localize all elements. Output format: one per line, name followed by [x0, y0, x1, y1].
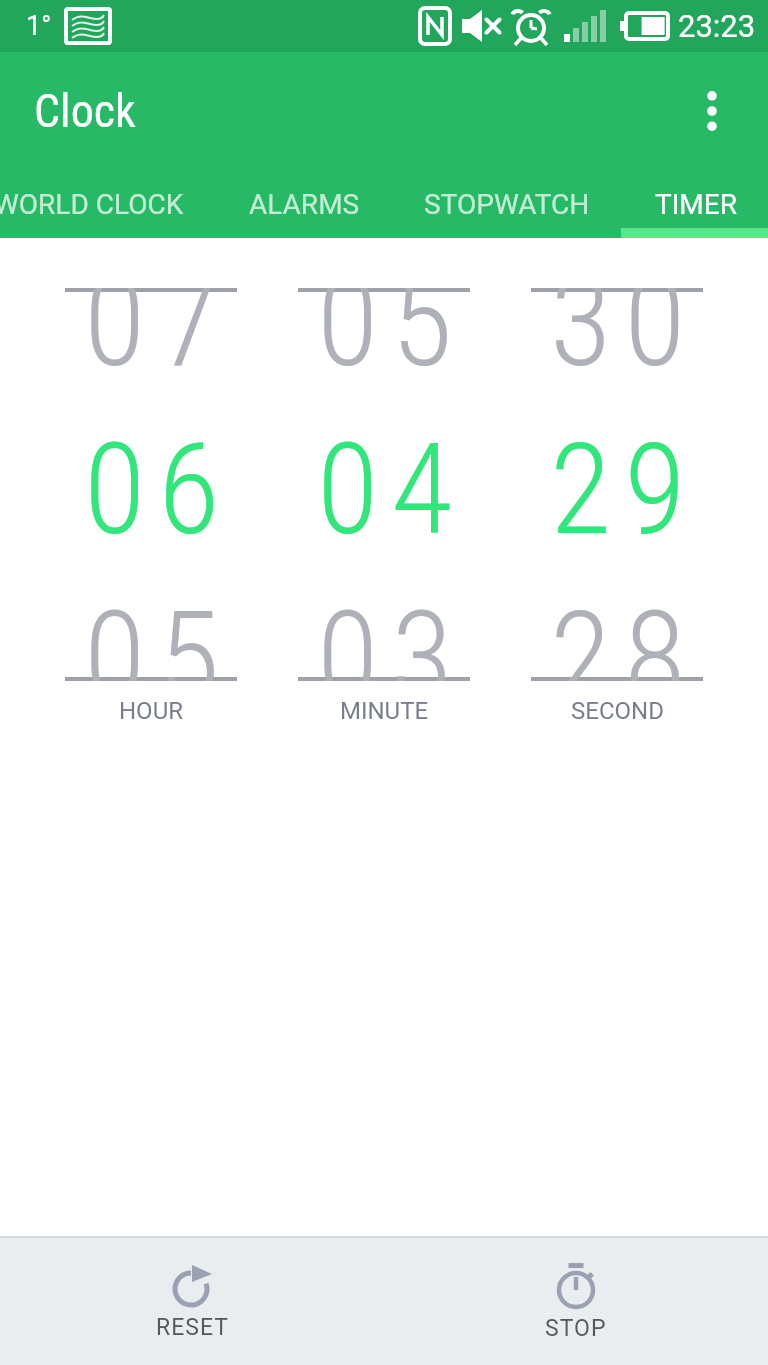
staticText: SECOND — [571, 697, 664, 725]
staticText: MINUTE — [340, 697, 429, 725]
button[interactable]: STOPWATCH — [424, 188, 590, 221]
staticText: WORLD CLOCK — [0, 188, 184, 221]
button[interactable]: WORLD CLOCK — [0, 188, 184, 221]
staticText: STOPWATCH — [424, 188, 590, 221]
staticText: 30 — [550, 288, 699, 396]
staticText: 28 — [550, 584, 699, 681]
staticText: ALARMS — [249, 188, 360, 221]
staticText: HOUR — [119, 697, 183, 725]
staticText: 05 — [317, 288, 466, 396]
staticText: 29 — [550, 416, 699, 564]
staticText: 03 — [317, 584, 466, 681]
button[interactable] — [696, 87, 728, 135]
staticText: 06 — [84, 416, 233, 564]
staticText: 04 — [317, 416, 466, 564]
button[interactable]: RESET — [112, 1268, 272, 1341]
staticText: 1° — [26, 10, 52, 42]
staticText: 23:23 — [678, 8, 756, 44]
staticText: TIMER — [655, 188, 737, 221]
staticText: Clock — [34, 84, 136, 138]
button[interactable]: ALARMS — [249, 188, 360, 221]
staticText: STOP — [545, 1315, 607, 1342]
staticText: RESET — [156, 1314, 229, 1341]
staticText: 05 — [84, 584, 233, 681]
button[interactable]: TIMER — [655, 188, 737, 221]
staticText: 07 — [84, 288, 233, 396]
button[interactable]: STOP — [496, 1261, 656, 1342]
